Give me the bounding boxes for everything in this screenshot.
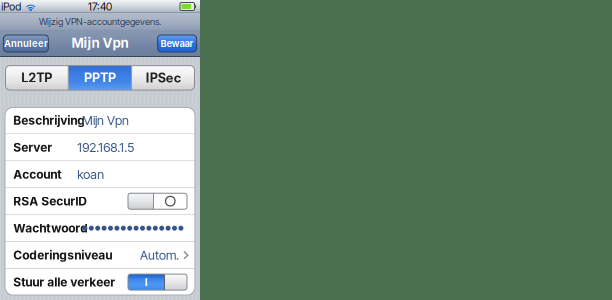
staticText: Mijn Vpn <box>71 35 128 51</box>
button[interactable]: Server <box>5 134 195 160</box>
staticText: Wijzig VPN-accountgegevens. <box>39 16 161 27</box>
staticText: Account <box>13 167 61 181</box>
button[interactable]: PPTP <box>69 66 131 90</box>
button[interactable]: Stuur alle verkeer <box>5 269 195 295</box>
staticText: Stuur alle verkeer <box>13 275 115 289</box>
staticText: Mijn Vpn <box>82 113 129 128</box>
staticText: Coderingsniveau <box>13 248 112 262</box>
staticText: 17:40 <box>88 0 112 13</box>
staticText: Server <box>13 140 52 155</box>
staticText: L2TP <box>21 70 52 85</box>
staticText: Wachtwoord <box>13 221 88 235</box>
staticText: Beschrijving <box>13 113 85 128</box>
staticText: Bewaar <box>161 38 194 49</box>
button[interactable]: Wachtwoord <box>5 215 195 241</box>
button[interactable]: L2TP <box>5 66 68 90</box>
staticText: iPod <box>1 0 21 13</box>
staticText: RSA SecurID <box>13 194 87 208</box>
button[interactable]: RSA SecurID <box>5 188 195 214</box>
staticText: PPTP <box>84 70 116 85</box>
button[interactable]: Bewaar <box>158 35 197 52</box>
button[interactable]: IPSec <box>132 66 194 90</box>
staticText: 192.168.1.5 <box>77 140 134 155</box>
button[interactable]: Account <box>5 161 195 187</box>
staticText: Annuleer <box>4 38 48 49</box>
staticText: koan <box>77 167 104 182</box>
staticText: Autom. <box>140 247 179 263</box>
button[interactable]: Beschrijving <box>5 107 195 133</box>
button[interactable]: Coderingsniveau <box>5 242 195 268</box>
button[interactable]: Annuleer <box>3 35 48 52</box>
staticText: IPSec <box>146 70 181 85</box>
